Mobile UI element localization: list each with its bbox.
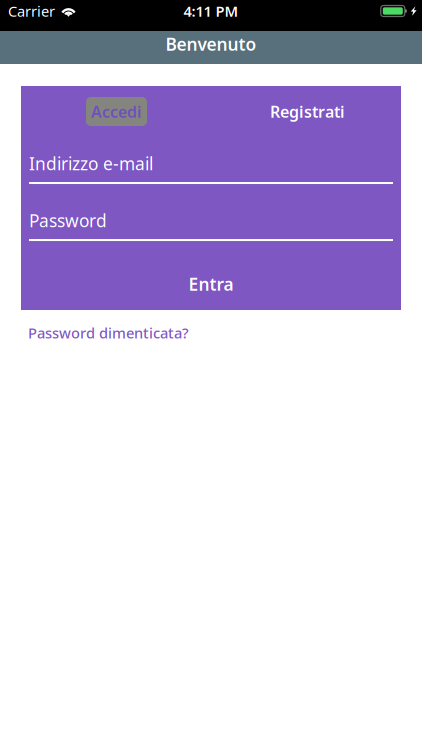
button[interactable]: Entra — [21, 258, 401, 310]
button[interactable]: Password dimenticata? — [0, 310, 189, 353]
staticText: Password dimenticata? — [28, 323, 189, 342]
staticText: Accedi — [91, 101, 142, 122]
staticText: Registrati — [270, 101, 345, 122]
staticText: Carrier — [8, 1, 55, 21]
staticText: Password — [29, 209, 107, 232]
staticText: Benvenuto — [165, 32, 256, 55]
button[interactable]: Accedi — [86, 97, 147, 126]
staticText: 4:11 PM — [183, 1, 238, 21]
staticText: Indirizzo e-mail — [29, 152, 153, 175]
button[interactable]: Registrati — [270, 97, 345, 126]
staticText: Entra — [188, 272, 233, 295]
